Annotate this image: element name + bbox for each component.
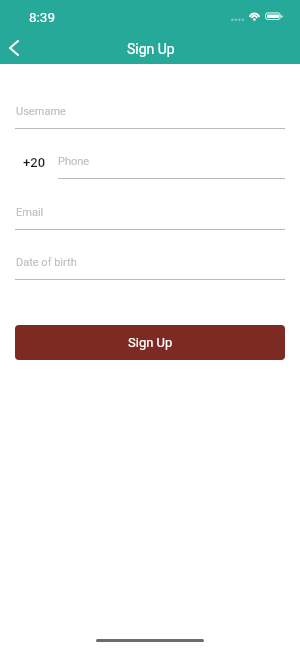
staticText: +20 [23, 155, 46, 170]
button[interactable] [15, 194, 285, 231]
other: Signal, Wi-Fi and battery status [231, 10, 287, 22]
staticText: Sign Up [128, 335, 173, 350]
button[interactable] [15, 244, 285, 281]
staticText: Username [16, 105, 66, 118]
button[interactable] [15, 93, 285, 130]
button[interactable] [58, 143, 285, 180]
staticText: Sign Up [127, 41, 175, 57]
button[interactable]: Back [0, 32, 28, 64]
button[interactable] [15, 148, 57, 180]
button[interactable]: Sign Up [15, 325, 285, 360]
staticText: Phone [58, 155, 90, 168]
staticText: Email [16, 206, 44, 219]
staticText: 8:39 [29, 9, 56, 25]
staticText: Date of birth [16, 256, 77, 269]
